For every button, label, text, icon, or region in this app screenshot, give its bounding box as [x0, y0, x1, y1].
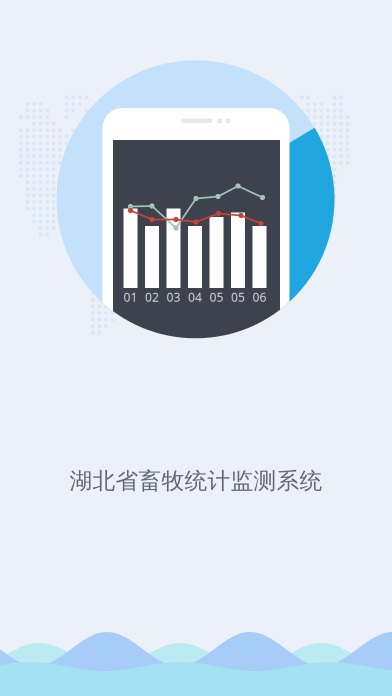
staticText: 05 [231, 289, 245, 305]
staticText: 湖北省畜牧统计监测系统 [69, 467, 322, 495]
staticText: 02 [145, 289, 159, 305]
staticText: 03 [166, 289, 180, 305]
staticText: 05 [209, 289, 223, 305]
staticText: 04 [188, 289, 202, 305]
staticText: 01 [123, 289, 137, 305]
staticText: 06 [252, 289, 266, 305]
